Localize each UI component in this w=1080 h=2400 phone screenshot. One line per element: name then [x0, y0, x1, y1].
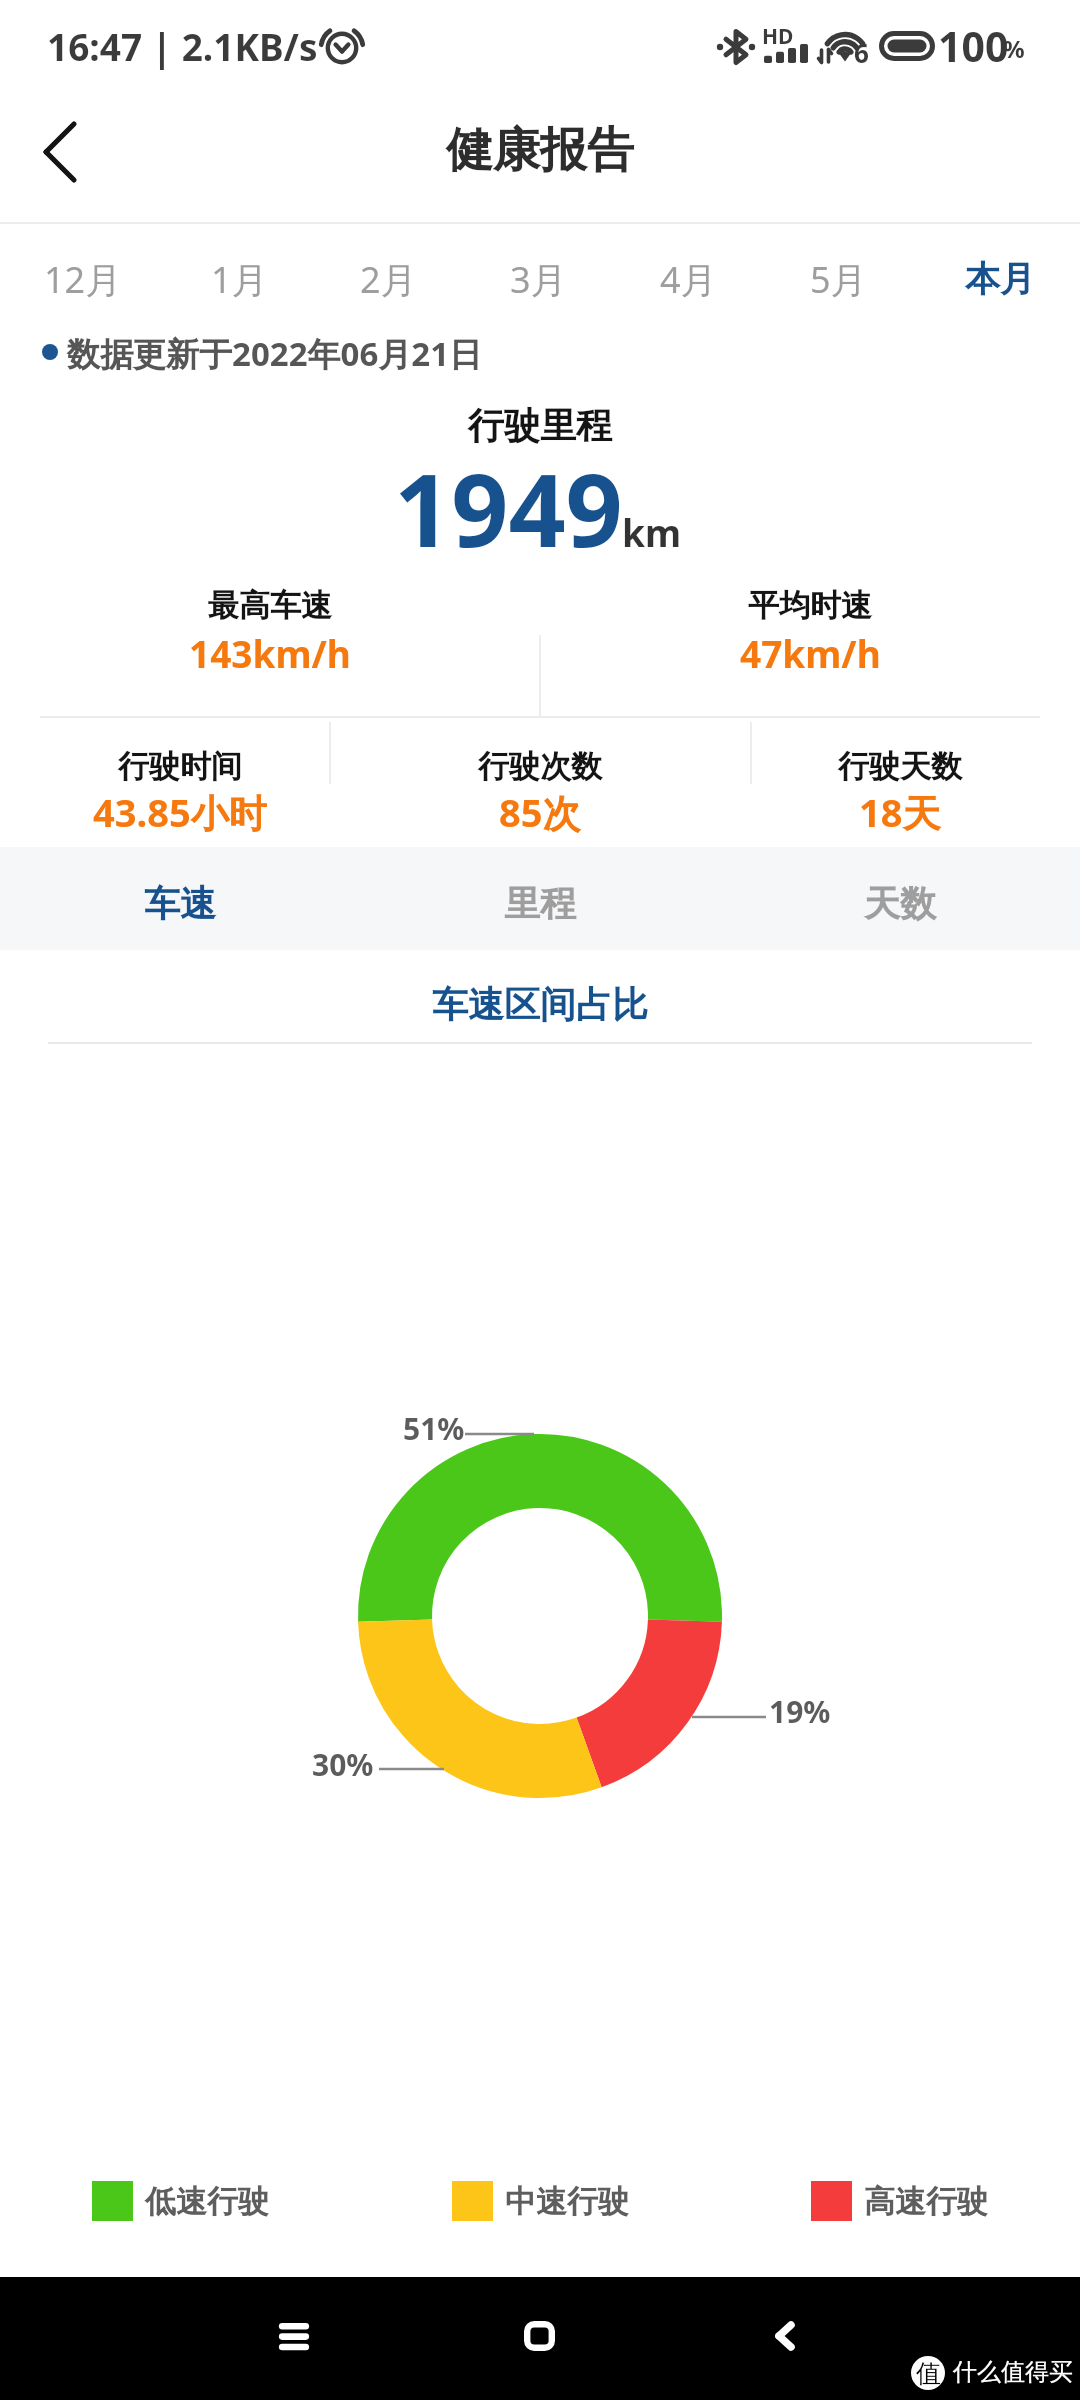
- staticText: 6: [854, 35, 869, 70]
- staticText: 12月: [44, 255, 122, 304]
- staticText: 1949: [394, 440, 623, 576]
- staticText: 行驶时间: [118, 747, 242, 786]
- button[interactable]: 高速行驶: [811, 2176, 988, 2226]
- staticText: 47km/h: [740, 628, 881, 678]
- staticText: 30%: [312, 1744, 374, 1785]
- staticText: 行驶次数: [478, 747, 602, 786]
- staticText: 18天: [859, 786, 941, 838]
- staticText: 143km/h: [189, 628, 351, 678]
- button[interactable]: [0, 722, 360, 847]
- staticText: 车速: [144, 881, 216, 926]
- staticText: 值: [916, 2358, 941, 2389]
- staticText: 车速区间占比: [432, 982, 648, 1027]
- button[interactable]: 中速行驶: [452, 2176, 629, 2226]
- button[interactable]: 低速行驶: [92, 2176, 269, 2226]
- staticText: 51%: [403, 1408, 465, 1449]
- button[interactable]: Home: [494, 2291, 584, 2381]
- staticText: km: [622, 507, 682, 557]
- staticText: 天数: [864, 881, 936, 926]
- staticText: 行驶里程: [468, 403, 612, 448]
- button[interactable]: Back: [12, 104, 108, 200]
- staticText: 16:47 | 2.1KB/s: [47, 21, 318, 71]
- staticText: 19%: [769, 1691, 831, 1732]
- staticText: 本月: [965, 257, 1035, 301]
- staticText: 平均时速: [748, 586, 872, 625]
- staticText: 1月: [211, 255, 268, 304]
- staticText: 中速行驶: [505, 2182, 629, 2221]
- staticText: 健康报告: [446, 121, 634, 180]
- button[interactable]: 5月: [766, 241, 910, 317]
- button[interactable]: [360, 722, 720, 847]
- staticText: 最高车速: [208, 586, 332, 625]
- staticText: %: [1003, 32, 1025, 65]
- button[interactable]: Recent apps: [249, 2291, 339, 2381]
- button[interactable]: 4月: [616, 241, 760, 317]
- staticText: 3月: [510, 255, 567, 304]
- staticText: 低速行驶: [145, 2182, 269, 2221]
- button[interactable]: 天数: [720, 852, 1080, 955]
- button[interactable]: 本月: [928, 241, 1072, 317]
- button[interactable]: [720, 722, 1080, 847]
- staticText: 行驶天数: [838, 747, 962, 786]
- staticText: 43.85小时: [93, 786, 267, 838]
- staticText: 高速行驶: [864, 2182, 988, 2221]
- staticText: 5月: [810, 255, 867, 304]
- button[interactable]: 12月: [11, 241, 155, 317]
- button[interactable]: 车速: [0, 852, 360, 955]
- staticText: 4月: [660, 255, 717, 304]
- button[interactable]: 1月: [167, 241, 311, 317]
- button[interactable]: 里程: [360, 852, 720, 955]
- staticText: 里程: [504, 881, 576, 926]
- staticText: 数据更新于2022年06月21日: [67, 331, 483, 376]
- button[interactable]: 2月: [316, 241, 460, 317]
- staticText: 100: [938, 18, 1009, 74]
- staticText: HD: [762, 22, 794, 51]
- staticText: 2月: [360, 255, 417, 304]
- staticText: 85次: [499, 786, 581, 838]
- button[interactable]: Back: [740, 2291, 830, 2381]
- staticText: 什么值得买: [953, 2357, 1073, 2387]
- button[interactable]: 3月: [466, 241, 610, 317]
